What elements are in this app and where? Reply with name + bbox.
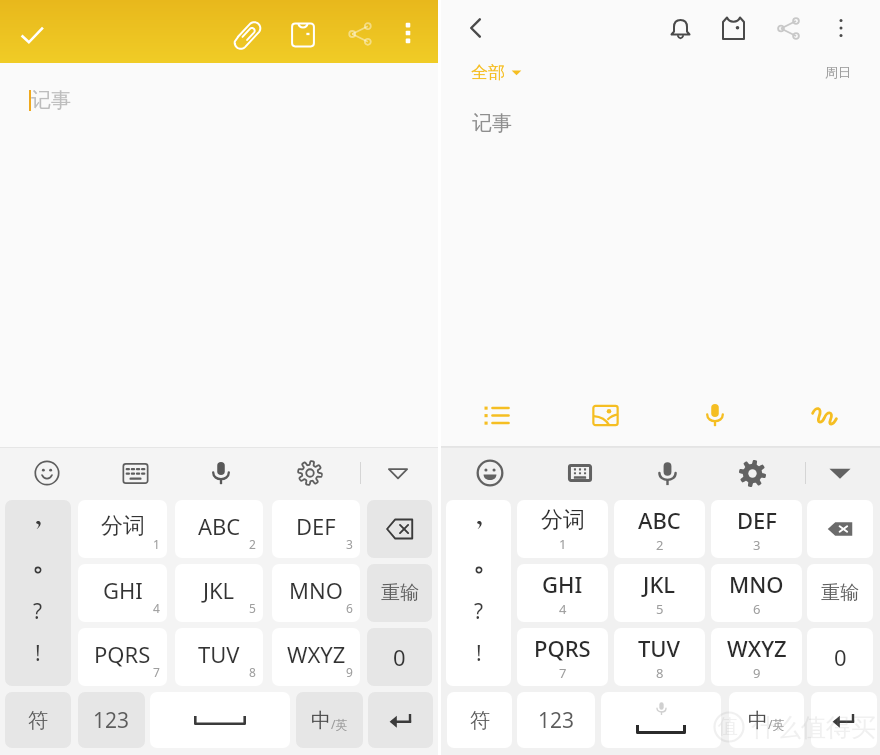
button[interactable]: 符	[5, 692, 71, 748]
staticText: ABC	[638, 505, 681, 535]
button[interactable]: Chinese English toggle	[296, 692, 363, 748]
staticText: 符	[470, 708, 490, 733]
button[interactable]: Keyboard layout	[554, 447, 606, 499]
staticText: 9	[346, 664, 353, 680]
staticText: GHI	[103, 575, 143, 605]
staticText: 记事	[472, 111, 512, 136]
button[interactable]: Settings	[284, 447, 336, 499]
staticText: 中	[311, 708, 331, 733]
button[interactable]: WXYZ	[272, 628, 360, 686]
button[interactable]: Share	[337, 12, 383, 56]
button[interactable]: Punctuation	[446, 500, 511, 686]
button[interactable]: Voice input	[641, 447, 693, 499]
button[interactable]: 重输	[807, 564, 873, 622]
staticText: 0	[834, 642, 847, 672]
staticText: /英	[768, 716, 785, 732]
button[interactable]: Emoji	[464, 447, 516, 499]
button[interactable]: Backspace	[367, 500, 432, 558]
staticText: 分词	[541, 506, 585, 534]
button[interactable]: Enter	[811, 692, 877, 748]
button[interactable]: Space	[150, 692, 290, 748]
button[interactable]: 全部	[471, 60, 522, 84]
button[interactable]: JKL	[175, 564, 263, 622]
staticText: MNO	[729, 569, 784, 599]
staticText: TUV	[638, 633, 681, 663]
staticText: PQRS	[534, 633, 591, 663]
button[interactable]: Emoji	[21, 447, 73, 499]
button[interactable]: JKL	[614, 564, 705, 622]
button[interactable]: Chinese English toggle	[729, 692, 804, 748]
staticText: 6	[346, 600, 353, 616]
staticText: 值	[718, 714, 738, 739]
button[interactable]: GHI	[517, 564, 608, 622]
staticText: 记事	[31, 88, 71, 113]
button[interactable]: 123	[517, 692, 595, 748]
button[interactable]: GHI	[78, 564, 167, 622]
button[interactable]: TUV	[614, 628, 705, 686]
button[interactable]: 符	[447, 692, 512, 748]
staticText: TUV	[198, 639, 240, 669]
button[interactable]: WXYZ	[711, 628, 802, 686]
staticText: 7	[559, 664, 567, 682]
staticText: 全部	[471, 62, 505, 83]
button[interactable]: TUV	[175, 628, 263, 686]
staticText: 8	[249, 664, 256, 680]
staticText: 5	[656, 600, 664, 618]
button[interactable]: Settings	[726, 447, 778, 499]
button[interactable]: Keyboard layout	[109, 447, 161, 499]
staticText: !	[476, 639, 482, 668]
button[interactable]: Insert image	[582, 392, 628, 438]
button[interactable]: MNO	[711, 564, 802, 622]
staticText: 5	[249, 600, 256, 616]
staticText: PQRS	[94, 639, 151, 669]
button[interactable]: Enter	[368, 692, 433, 748]
button[interactable]: Share	[766, 6, 810, 50]
button[interactable]: 分词	[517, 500, 608, 558]
staticText: GHI	[542, 569, 583, 599]
staticText: 什么值得买	[751, 712, 876, 743]
button[interactable]: Punctuation	[5, 500, 71, 686]
button[interactable]: Backspace	[807, 500, 873, 558]
button[interactable]: Hide keyboard	[814, 447, 866, 499]
button[interactable]: DEF	[711, 500, 802, 558]
staticText: 3	[346, 536, 353, 552]
button[interactable]: Back	[454, 6, 498, 50]
button[interactable]: DEF	[272, 500, 360, 558]
button[interactable]: Checklist	[473, 392, 519, 438]
button[interactable]: Hide keyboard	[372, 447, 424, 499]
button[interactable]: 123	[78, 692, 145, 748]
button[interactable]: Space	[601, 692, 721, 748]
staticText: 周日	[825, 64, 851, 80]
button[interactable]: More options	[819, 6, 863, 50]
button[interactable]: Handwriting	[801, 392, 847, 438]
staticText: DEF	[296, 511, 336, 541]
staticText: 6	[753, 600, 761, 618]
button[interactable]: 重输	[367, 564, 432, 622]
button[interactable]: ABC	[614, 500, 705, 558]
button[interactable]: Voice input	[692, 392, 738, 438]
button[interactable]: 分词	[78, 500, 167, 558]
button[interactable]: ABC	[175, 500, 263, 558]
button[interactable]: Notes	[280, 12, 326, 58]
staticText: !	[35, 639, 41, 668]
staticText: 重输	[821, 581, 859, 605]
button[interactable]: More options	[387, 11, 429, 55]
button[interactable]: PQRS	[517, 628, 608, 686]
button[interactable]: Voice input	[195, 447, 247, 499]
staticText: ABC	[198, 511, 241, 541]
button[interactable]: Done	[10, 13, 54, 57]
button[interactable]: 0	[367, 628, 432, 686]
staticText: 7	[153, 664, 160, 680]
button[interactable]: PQRS	[78, 628, 167, 686]
staticText: 9	[753, 664, 761, 682]
staticText: 1	[153, 536, 160, 552]
button[interactable]: 0	[807, 628, 873, 686]
staticText: 8	[656, 664, 664, 682]
button[interactable]: Reminder	[658, 6, 702, 50]
staticText: 4	[559, 600, 567, 618]
staticText: 2	[656, 536, 664, 554]
button[interactable]: Attach	[224, 12, 270, 58]
button[interactable]: Notebook	[711, 6, 755, 50]
staticText: 4	[153, 600, 160, 616]
button[interactable]: MNO	[272, 564, 360, 622]
